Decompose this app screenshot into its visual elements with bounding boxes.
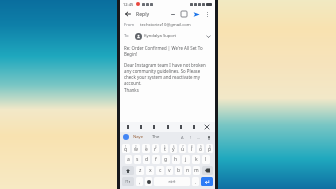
button[interactable]: b [175, 166, 182, 175]
button[interactable]: k [192, 155, 200, 164]
staticText: c [159, 167, 162, 174]
button[interactable]: Close formatting [203, 123, 211, 131]
staticText: g [164, 156, 168, 163]
staticText: 1 [125, 145, 127, 149]
staticText: f [155, 156, 157, 163]
staticText: 2 [135, 145, 137, 149]
button[interactable]: x [146, 166, 154, 175]
button[interactable]: Format 4 [177, 123, 185, 131]
button[interactable]: Format 2 [150, 123, 158, 131]
staticText: k [195, 156, 198, 163]
button[interactable]: Backspace [202, 166, 213, 175]
button[interactable]: Attach [168, 10, 177, 19]
staticText: d [145, 156, 149, 163]
button[interactable]: h [172, 155, 180, 164]
button[interactable]: 9 [197, 144, 204, 153]
staticText: l [205, 156, 207, 163]
staticText: j [185, 156, 187, 163]
button[interactable]: Format 5 [190, 123, 198, 131]
staticText: … [197, 135, 201, 140]
button[interactable]: 3 [142, 144, 150, 153]
button[interactable]: Emoji [136, 177, 143, 186]
staticText: 4 [155, 145, 157, 149]
button[interactable]: d [143, 155, 150, 164]
staticText: Dear Instagram team I have not broken an… [124, 62, 211, 86]
button[interactable]: 8 [188, 144, 195, 153]
staticText: h [174, 156, 178, 163]
button[interactable]: 4 [152, 144, 159, 153]
staticText: . [195, 179, 197, 185]
button[interactable]: ?1१ [122, 177, 134, 186]
button[interactable]: Format 1 [137, 123, 145, 131]
staticText: 9 [200, 145, 202, 149]
button[interactable]: The [152, 134, 160, 140]
button[interactable]: f [152, 155, 160, 164]
button[interactable]: 7 [179, 144, 186, 153]
staticText: s [136, 156, 139, 163]
staticText: 0 [209, 145, 211, 149]
button[interactable]: m [193, 166, 200, 175]
button[interactable]: Space [154, 177, 190, 186]
button[interactable]: g [162, 155, 170, 164]
button[interactable]: 1 [122, 144, 130, 153]
button[interactable]: Language [145, 177, 152, 186]
staticText: a [127, 156, 130, 163]
button[interactable]: Format 0 [124, 123, 132, 131]
button[interactable]: 5 [161, 144, 168, 153]
button[interactable]: Voice input [205, 134, 212, 141]
staticText: u [181, 146, 185, 153]
button[interactable]: Back [123, 9, 133, 19]
button[interactable]: c [156, 166, 164, 175]
button[interactable]: Send [191, 9, 201, 19]
staticText: b [177, 167, 181, 174]
staticText: अंग्रेजी [168, 180, 176, 184]
button[interactable]: j [182, 155, 190, 164]
button[interactable]: Save draft [179, 9, 189, 19]
staticText: y [172, 146, 175, 153]
staticText: 8 [191, 145, 193, 149]
staticText: techstoriez10@gmail.com [140, 22, 191, 28]
button[interactable]: l [202, 155, 210, 164]
staticText: 5 [164, 145, 166, 149]
button[interactable]: z [136, 166, 144, 175]
button[interactable]: More options [203, 10, 212, 19]
staticText: o [199, 146, 203, 153]
staticText: 7 [182, 145, 184, 149]
staticText: m [194, 167, 199, 174]
staticText: w [134, 146, 138, 153]
button[interactable]: Google [123, 134, 129, 140]
staticText: To [124, 33, 129, 39]
staticText: p [208, 146, 212, 153]
button[interactable]: Format 3 [164, 123, 172, 131]
button[interactable]: Shift [122, 166, 134, 175]
staticText: x [149, 167, 152, 174]
staticText: Thanks [124, 87, 139, 93]
button[interactable]: Naye [133, 134, 144, 140]
staticText: ?1१ [125, 179, 131, 184]
staticText: z [139, 167, 142, 174]
button[interactable]: n [184, 166, 191, 175]
button[interactable]: 2 [132, 144, 140, 153]
button[interactable]: From [120, 20, 215, 30]
button[interactable]: 0 [206, 144, 213, 153]
button[interactable]: . [192, 177, 199, 186]
staticText: Reply [136, 11, 150, 18]
staticText: 3 [145, 145, 147, 149]
button[interactable]: 6 [170, 144, 177, 153]
button[interactable]: v [166, 166, 173, 175]
staticText: , [139, 179, 141, 185]
button[interactable]: Enter [201, 177, 213, 186]
staticText: v [168, 167, 171, 174]
staticText: 6 [173, 145, 175, 149]
staticText: Kyndalya Suport [144, 33, 177, 39]
staticText: A [181, 135, 184, 140]
staticText: i [191, 146, 193, 153]
button[interactable]: s [134, 155, 141, 164]
staticText: From [124, 22, 135, 28]
staticText: e [145, 146, 148, 153]
button[interactable]: To [120, 30, 215, 42]
staticText: Re: Order Confirmed | We're All Set To B… [124, 45, 211, 57]
button[interactable]: a [125, 155, 132, 164]
button[interactable]: Emoji [179, 134, 185, 140]
staticText: t [164, 146, 166, 153]
